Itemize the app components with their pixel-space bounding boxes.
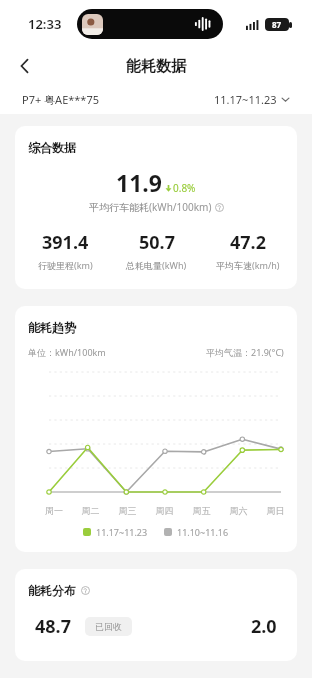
staticText: 综合数据 bbox=[28, 140, 76, 155]
staticText: 47.2 bbox=[230, 230, 266, 255]
staticText: (km) bbox=[74, 259, 93, 271]
staticText: 已回收 bbox=[95, 621, 122, 632]
staticText: 周日 bbox=[257, 505, 294, 516]
staticText: 平均车速 bbox=[216, 260, 252, 271]
staticText: 11.17~11.23 bbox=[214, 92, 277, 107]
staticText: 周四 bbox=[146, 505, 183, 516]
button[interactable]: Back bbox=[10, 51, 40, 81]
staticText: 行驶里程 bbox=[38, 260, 74, 271]
staticText: (kWh) bbox=[162, 259, 187, 271]
staticText: 11.17~11.23 bbox=[96, 526, 148, 538]
staticText: 周六 bbox=[220, 505, 257, 516]
staticText: 能耗分布 bbox=[28, 583, 76, 598]
staticText: 能耗趋势 bbox=[28, 320, 76, 335]
button[interactable]: 11.17~11.23 bbox=[214, 92, 290, 107]
staticText: 单位：kWh/100km bbox=[28, 346, 106, 358]
staticText: 周二 bbox=[72, 505, 109, 516]
staticText: P7+ 粤AE***75 bbox=[22, 92, 100, 107]
staticText: 总耗电量 bbox=[126, 260, 162, 271]
staticText: 48.7 bbox=[35, 614, 71, 639]
staticText: (km/h) bbox=[252, 259, 280, 271]
button[interactable]: 11.10~11.16 bbox=[164, 526, 229, 538]
staticText: 周五 bbox=[183, 505, 220, 516]
staticText: 11.9 bbox=[116, 167, 162, 198]
staticText: (kWh/100km) bbox=[149, 200, 212, 214]
staticText: 周三 bbox=[109, 505, 146, 516]
staticText: 平均气温：21.9(°C) bbox=[206, 346, 284, 358]
staticText: 平均行车能耗 bbox=[89, 201, 149, 214]
button[interactable]: 11.17~11.23 bbox=[83, 526, 148, 538]
staticText: 50.7 bbox=[139, 230, 175, 255]
staticText: 2.0 bbox=[251, 614, 277, 639]
staticText: 87 bbox=[272, 19, 282, 30]
staticText: 391.4 bbox=[42, 230, 89, 255]
staticText: 能耗数据 bbox=[126, 57, 186, 76]
staticText: 0.8% bbox=[173, 181, 196, 195]
staticText: 12:33 bbox=[28, 15, 62, 33]
staticText: 11.10~11.16 bbox=[177, 526, 229, 538]
staticText: 周一 bbox=[36, 505, 72, 516]
